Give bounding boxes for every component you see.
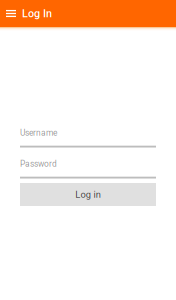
staticText: Log In bbox=[22, 7, 52, 20]
staticText: Log in bbox=[75, 189, 101, 200]
button[interactable]: Log in bbox=[20, 183, 156, 206]
button[interactable]: Log In bbox=[22, 0, 52, 27]
staticText: Password bbox=[20, 159, 57, 169]
staticText: Username bbox=[20, 128, 57, 138]
button[interactable]: Menu bbox=[0, 0, 22, 27]
